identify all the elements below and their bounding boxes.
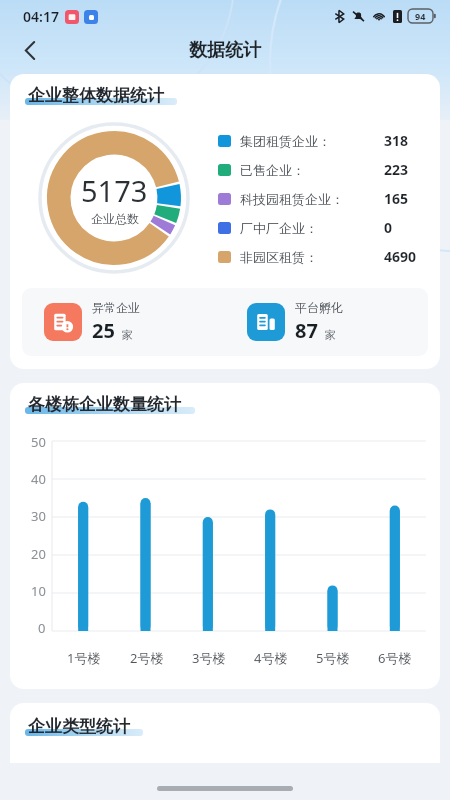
staticText: 0 — [38, 619, 46, 637]
staticText: 25 — [92, 317, 115, 344]
staticText: 非园区租赁： — [240, 249, 384, 265]
staticText: 2号楼 — [130, 649, 164, 667]
staticText: 5号楼 — [316, 649, 350, 667]
staticText: 3号楼 — [192, 649, 226, 667]
staticText: 10 — [31, 582, 46, 600]
staticText: 异常企业 — [92, 300, 140, 315]
button[interactable]: 已售企业： — [218, 155, 430, 184]
staticText: 4690 — [384, 247, 430, 266]
staticText: 20 — [31, 545, 46, 563]
staticText: 4号楼 — [254, 649, 288, 667]
staticText: 30 — [31, 507, 46, 525]
staticText: 企业总数 — [91, 211, 139, 226]
staticText: 1号楼 — [67, 649, 101, 667]
staticText: 平台孵化 — [295, 300, 343, 315]
staticText: 40 — [31, 470, 46, 488]
button[interactable]: 集团租赁企业： — [218, 126, 430, 155]
staticText: 5173 — [81, 171, 148, 210]
staticText: 50 — [31, 433, 46, 451]
button[interactable]: 平台孵化 — [247, 300, 428, 344]
staticText: 各楼栋企业数量统计 — [28, 394, 181, 415]
staticText: 企业整体数据统计 — [28, 85, 164, 106]
staticText: 家 — [325, 328, 336, 342]
staticText: 数据统计 — [189, 39, 261, 62]
staticText: 318 — [384, 131, 430, 150]
staticText: 家 — [122, 328, 133, 342]
staticText: 集团租赁企业： — [240, 133, 384, 149]
staticText: 6号楼 — [378, 649, 412, 667]
staticText: 已售企业： — [240, 162, 384, 178]
staticText: 94 — [415, 10, 426, 22]
staticText: 科技园租赁企业： — [240, 191, 384, 207]
staticText: 04:17 — [23, 7, 59, 26]
staticText: 223 — [384, 160, 430, 179]
staticText: 厂中厂企业： — [240, 220, 384, 236]
staticText: 企业类型统计 — [28, 716, 130, 737]
staticText: 165 — [384, 189, 430, 208]
button[interactable]: 非园区租赁： — [218, 242, 430, 271]
button[interactable]: 科技园租赁企业： — [218, 184, 430, 213]
button[interactable]: 异常企业 — [44, 300, 225, 344]
staticText: 0 — [384, 218, 430, 237]
staticText: 87 — [295, 317, 318, 344]
button[interactable]: 厂中厂企业： — [218, 213, 430, 242]
button[interactable]: Back — [12, 32, 48, 68]
